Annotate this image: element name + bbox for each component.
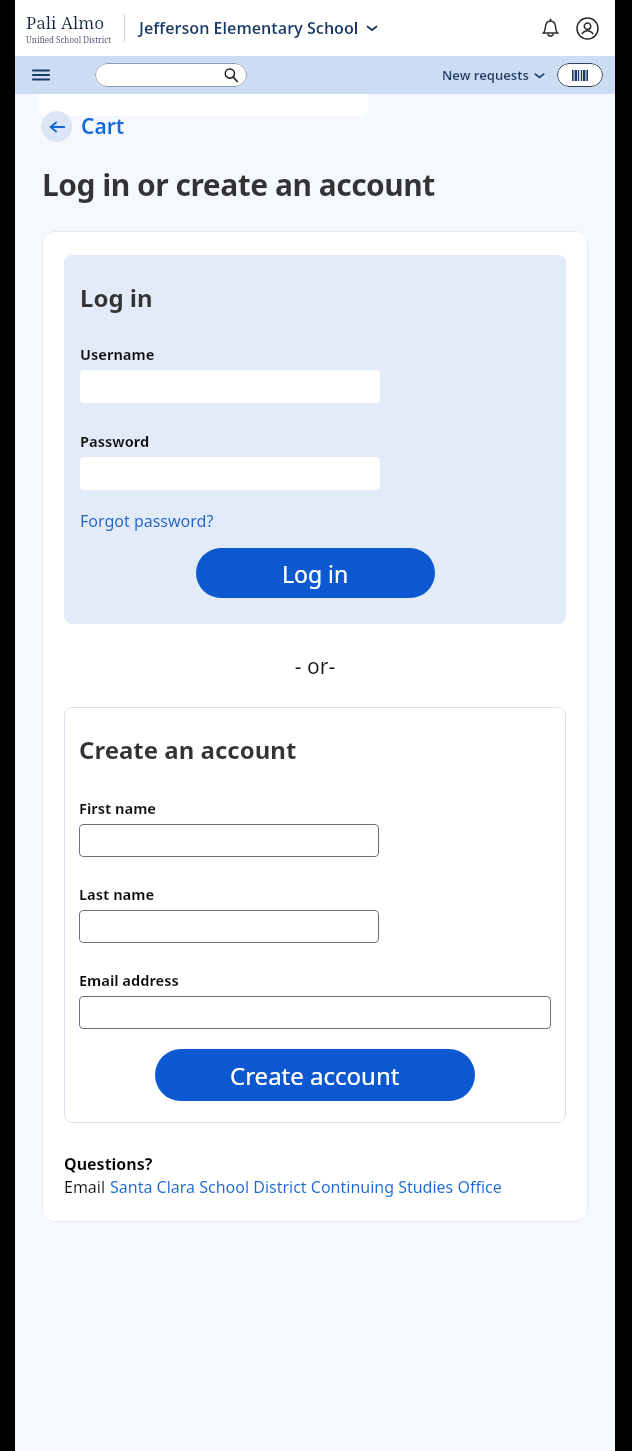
staticText: Create account — [230, 1059, 400, 1092]
staticText: Log in or create an account — [42, 164, 435, 205]
staticText: Pali Almo — [26, 11, 105, 34]
button[interactable]: Notifications — [533, 11, 567, 45]
staticText: New requests — [442, 66, 529, 84]
staticText: Unified School District — [26, 34, 112, 45]
staticText: Password — [80, 431, 150, 451]
button[interactable]: Last name — [79, 910, 379, 943]
button[interactable]: Account — [570, 11, 604, 45]
staticText: Jefferson Elementary School — [139, 17, 359, 39]
staticText: Log in — [282, 558, 349, 589]
button[interactable]: Create account — [155, 1049, 475, 1101]
staticText: Email — [64, 1176, 110, 1198]
button[interactable]: Jefferson Elementary School — [139, 17, 533, 39]
button[interactable]: Santa Clara School District Continuing S… — [110, 1176, 502, 1198]
button[interactable]: Menu — [27, 61, 55, 89]
staticText: First name — [79, 798, 157, 818]
staticText: Last name — [79, 884, 155, 904]
button[interactable]: Log in — [196, 548, 435, 598]
button[interactable]: Email address — [79, 996, 551, 1029]
staticText: - or- — [64, 652, 566, 681]
staticText: Questions? — [64, 1153, 153, 1175]
button[interactable]: Cart — [41, 111, 125, 142]
button[interactable]: New requests — [442, 66, 545, 84]
staticText: Email address — [79, 970, 179, 990]
button[interactable]: First name — [79, 824, 379, 857]
button[interactable]: Forgot password? — [80, 510, 214, 532]
button[interactable]: Scan barcode — [557, 63, 603, 87]
staticText: Create an account — [79, 733, 297, 766]
staticText: Cart — [81, 112, 125, 141]
button[interactable]: Search — [95, 63, 247, 87]
staticText: Log in — [80, 281, 153, 314]
staticText: Username — [80, 344, 155, 364]
